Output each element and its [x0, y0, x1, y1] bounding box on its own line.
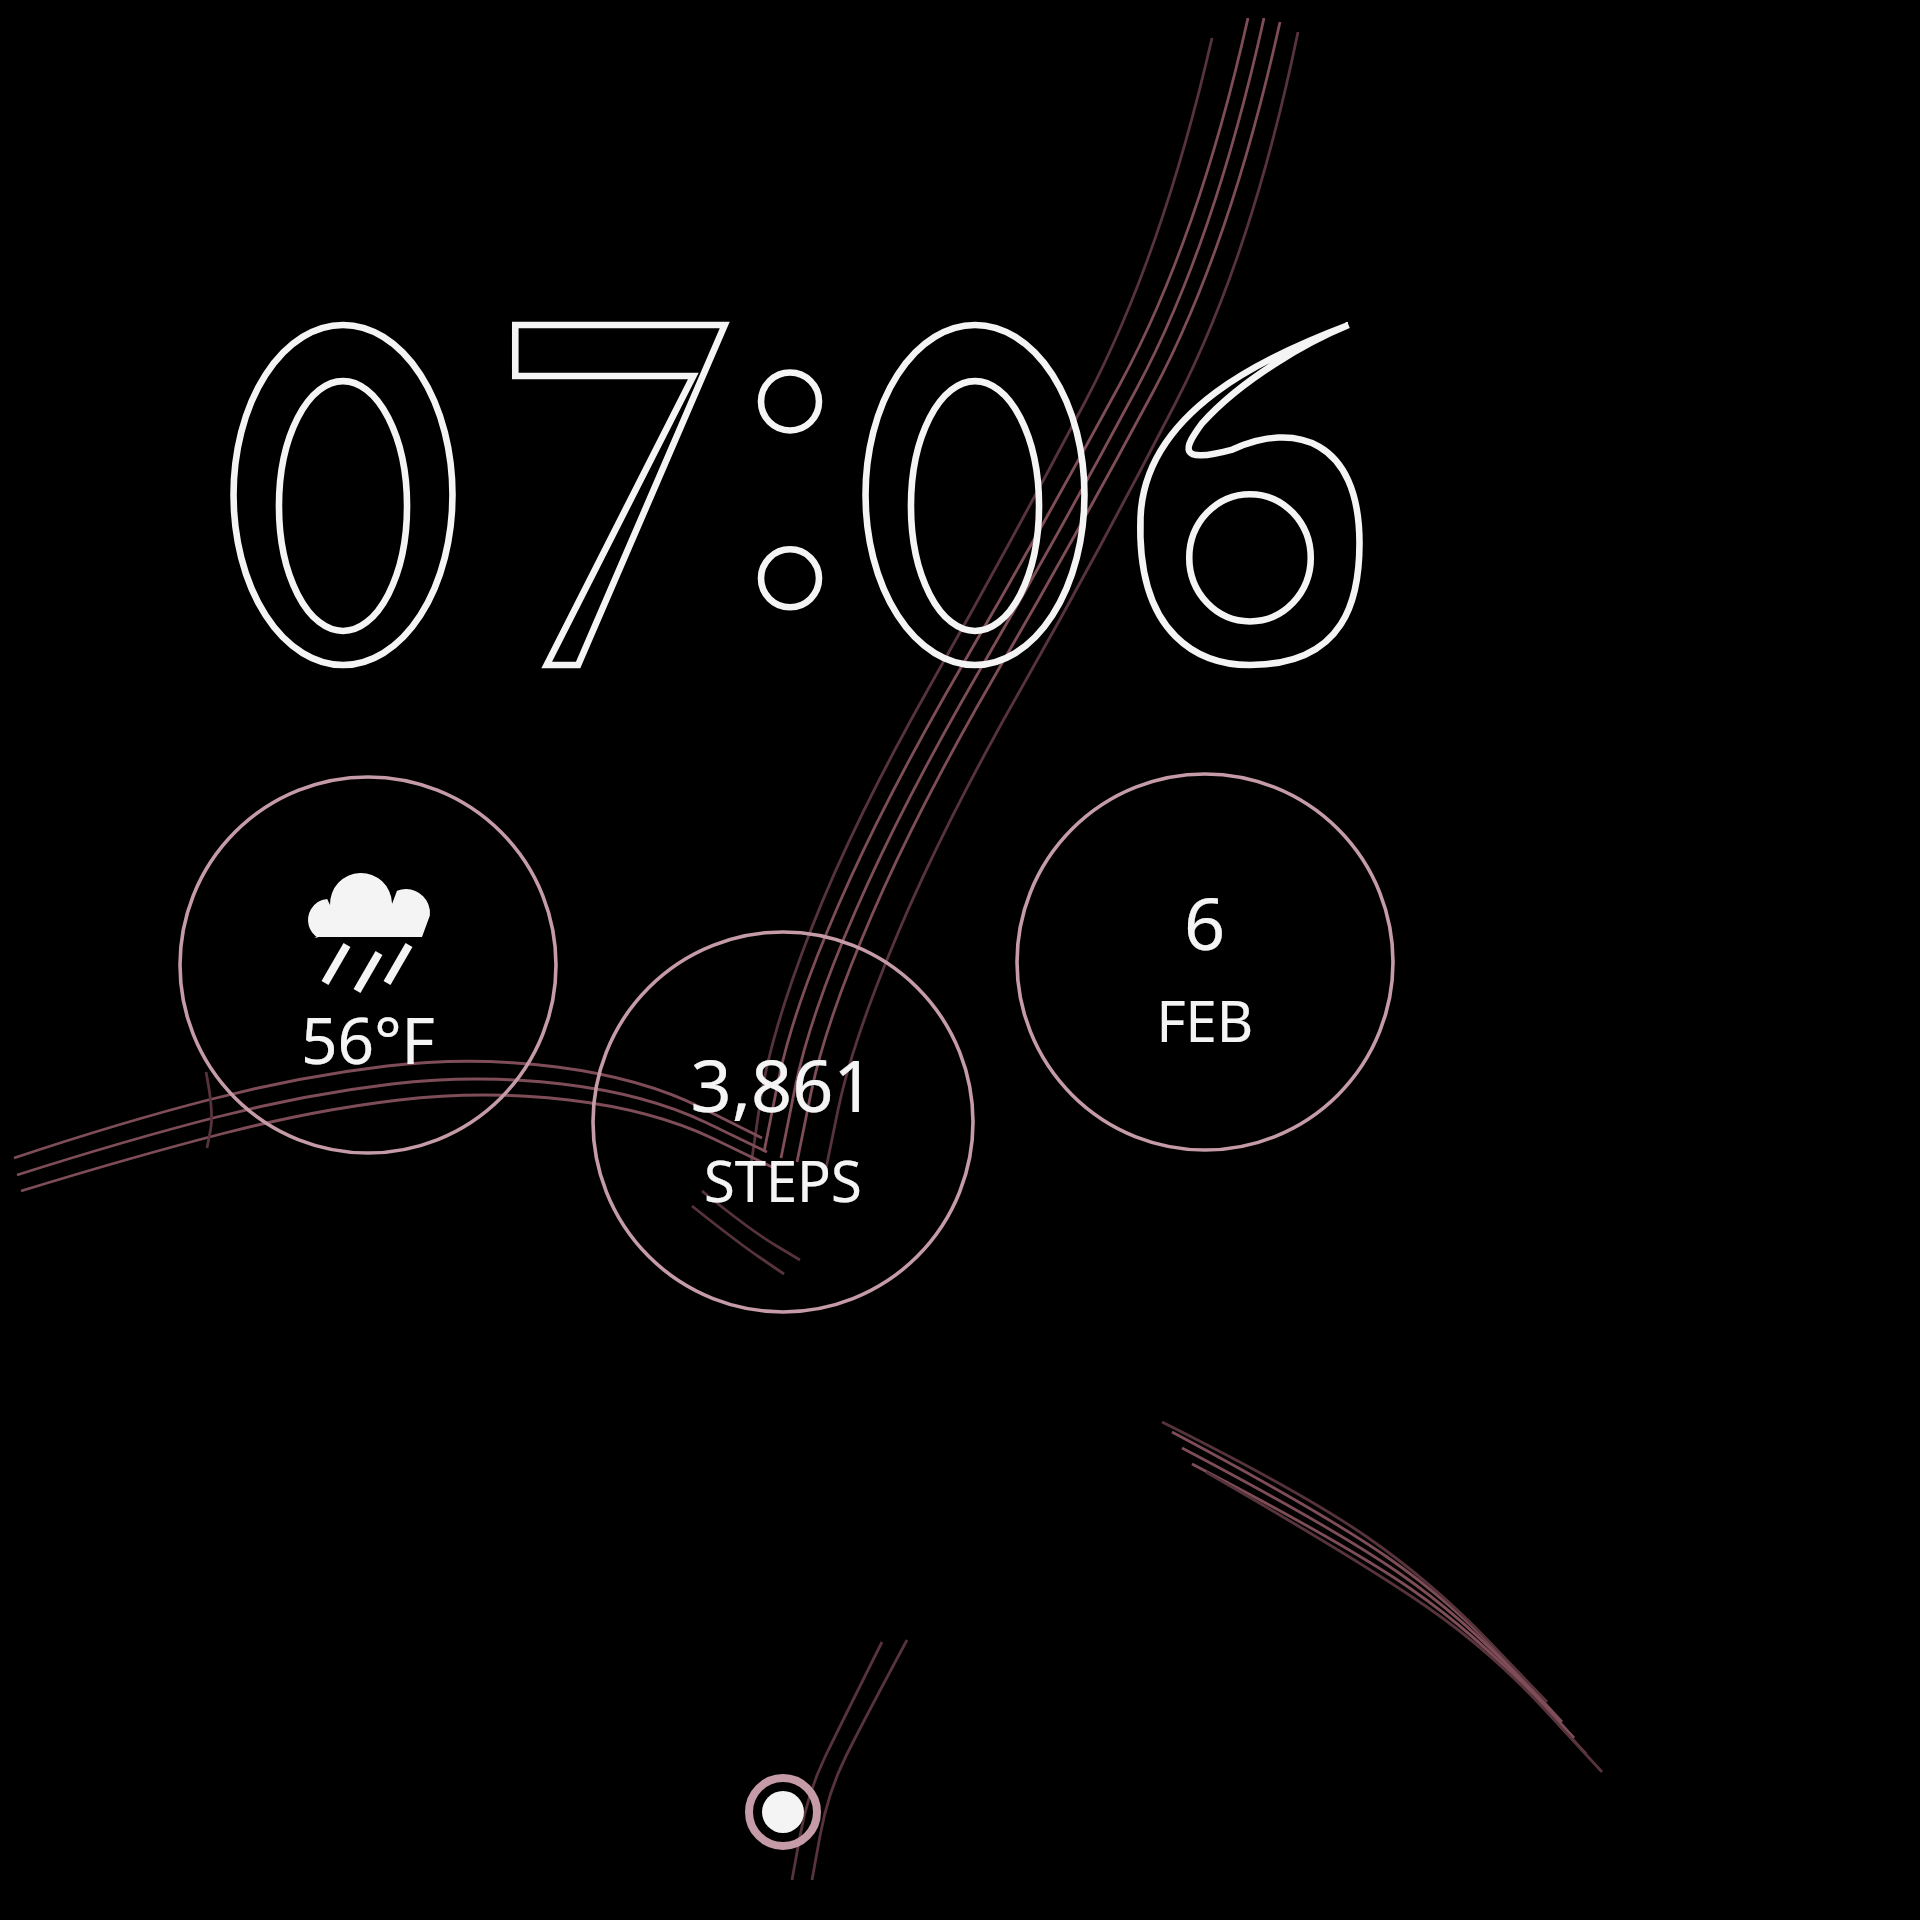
button[interactable]: Time, 7:06 — [225, 320, 1355, 675]
button[interactable]: Date, 6 February — [1017, 774, 1393, 1150]
button[interactable]: Steps, 3,861 steps — [593, 932, 973, 1312]
button[interactable]: Weather, 56 degrees Fahrenheit, rain — [180, 777, 556, 1153]
button[interactable]: Watch face indicator — [749, 1778, 817, 1846]
